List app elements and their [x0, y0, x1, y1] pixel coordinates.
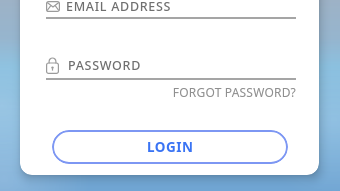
staticText: PASSWORD	[68, 57, 142, 74]
button[interactable]: FORGOT PASSWORD?	[46, 84, 296, 100]
button[interactable]: LOGIN	[52, 130, 288, 164]
staticText: EMAIL ADDRESS	[66, 0, 172, 15]
staticText: FORGOT PASSWORD?	[172, 84, 296, 100]
staticText: LOGIN	[147, 138, 194, 156]
